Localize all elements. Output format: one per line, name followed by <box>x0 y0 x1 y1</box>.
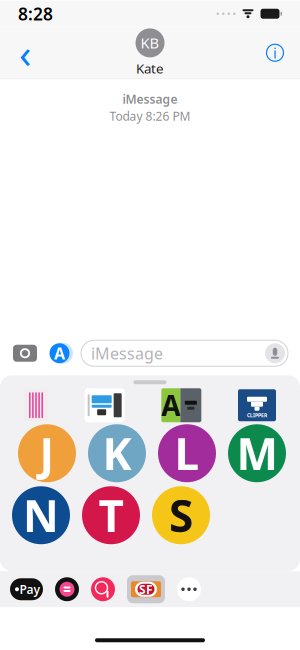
staticText: A <box>54 343 65 364</box>
button[interactable]: Digital Touch <box>55 577 79 601</box>
staticText: KB <box>140 33 159 53</box>
staticText: T <box>98 486 123 544</box>
staticText: S <box>169 486 193 544</box>
staticText: 8:28 <box>18 2 53 25</box>
staticText: A <box>161 387 180 424</box>
staticText: N <box>23 486 59 544</box>
button[interactable]: Images <box>91 577 115 601</box>
button[interactable]: Back <box>8 32 42 74</box>
button[interactable]: Sticker M <box>228 424 286 482</box>
button[interactable]: Apple Pay <box>10 577 43 601</box>
staticText: M <box>236 424 277 482</box>
staticText: Kate <box>136 59 164 77</box>
button[interactable]: Sticker S <box>152 486 210 544</box>
button[interactable]: Sticker K <box>88 424 146 482</box>
button[interactable]: Sticker J <box>18 424 76 482</box>
button[interactable]: More apps <box>177 577 201 601</box>
button[interactable]: Sticker T <box>82 486 140 544</box>
staticText: SF <box>139 581 153 597</box>
staticText: Pay <box>19 581 40 597</box>
button[interactable]: iMessage <box>81 340 288 366</box>
staticText: CLIPPER <box>247 412 267 419</box>
button[interactable]: Sticker N <box>12 486 70 544</box>
staticText: iMessage <box>122 91 177 107</box>
staticText: K <box>102 424 131 482</box>
staticText: Today 8:26 PM <box>109 108 190 124</box>
button[interactable]: Apps <box>47 343 72 364</box>
button[interactable]: KB <box>123 26 176 79</box>
staticText: i <box>273 43 277 62</box>
button[interactable]: Sticker L <box>158 424 216 482</box>
staticText: iMessage <box>91 343 163 364</box>
button[interactable]: Camera <box>12 343 38 363</box>
staticText: J <box>39 424 54 482</box>
staticText: ‹ <box>19 26 31 79</box>
button[interactable]: SF stickers <box>127 575 165 603</box>
staticText: L <box>174 424 199 482</box>
button[interactable]: Details <box>258 32 292 74</box>
